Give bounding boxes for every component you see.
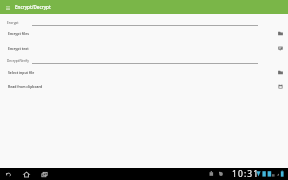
button[interactable]: Menu xyxy=(3,3,12,12)
staticText: Read from clipboard xyxy=(8,84,43,89)
staticText: Select input file xyxy=(8,70,35,75)
button[interactable]: Home xyxy=(20,168,33,180)
button[interactable]: Encrypt text xyxy=(0,42,288,54)
staticText: 10:31 xyxy=(232,168,260,180)
staticText: Encrypt text xyxy=(8,46,29,51)
staticText: Encrypt xyxy=(7,21,19,25)
staticText: Encrypt/Decrypt xyxy=(15,4,51,10)
button[interactable]: Back xyxy=(2,168,15,180)
button[interactable]: Read from clipboard xyxy=(0,80,288,92)
staticText: Decrypt/Verify xyxy=(7,59,29,63)
button[interactable]: Encrypt files xyxy=(0,27,288,39)
staticText: Encrypt files xyxy=(8,31,29,36)
button[interactable]: Recents xyxy=(38,168,51,180)
button[interactable]: Select input file xyxy=(0,66,288,78)
